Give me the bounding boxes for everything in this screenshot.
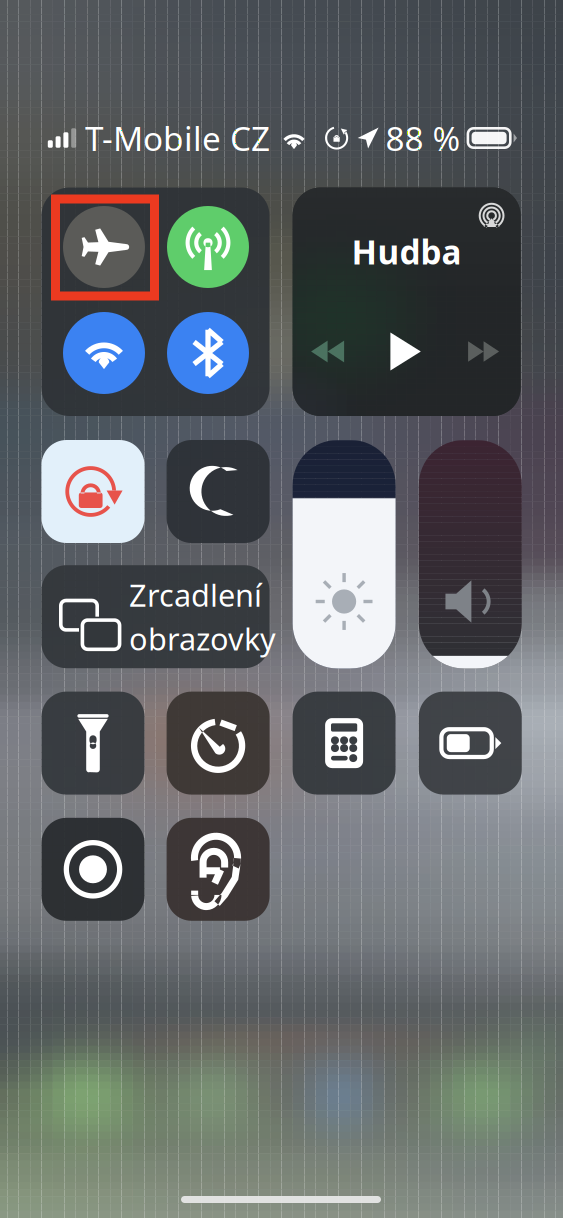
button[interactable]: Hearing xyxy=(167,818,270,921)
button[interactable]: Zrcadlení xyxy=(41,565,269,668)
button[interactable]: AirPlay xyxy=(470,191,514,235)
button[interactable]: Low Power Mode xyxy=(419,692,522,795)
button[interactable]: Airplane Mode xyxy=(63,206,145,288)
button[interactable]: Do Not Disturb xyxy=(167,440,270,543)
button[interactable]: Calculator xyxy=(293,692,396,795)
button[interactable]: Rotation Lock xyxy=(41,440,144,543)
staticText: T-Mobile CZ xyxy=(85,116,270,160)
button[interactable]: Cellular Data xyxy=(167,206,249,288)
staticText: 88 % xyxy=(386,116,461,160)
button[interactable]: Previous Track xyxy=(296,324,360,378)
button[interactable]: Timer xyxy=(167,692,270,795)
staticText: obrazovky xyxy=(129,618,276,659)
button[interactable]: Wi-Fi xyxy=(63,312,145,394)
button[interactable]: Next Track xyxy=(452,324,516,378)
button[interactable]: Brightness xyxy=(293,440,396,668)
button[interactable]: Flashlight xyxy=(41,692,144,795)
staticText: Hudba xyxy=(352,229,462,274)
button[interactable]: Bluetooth xyxy=(167,312,249,394)
button[interactable]: Volume xyxy=(419,440,522,668)
staticText: Zrcadlení xyxy=(129,574,262,615)
button[interactable]: Play xyxy=(374,324,438,378)
button[interactable]: Screen Recording xyxy=(41,818,144,921)
